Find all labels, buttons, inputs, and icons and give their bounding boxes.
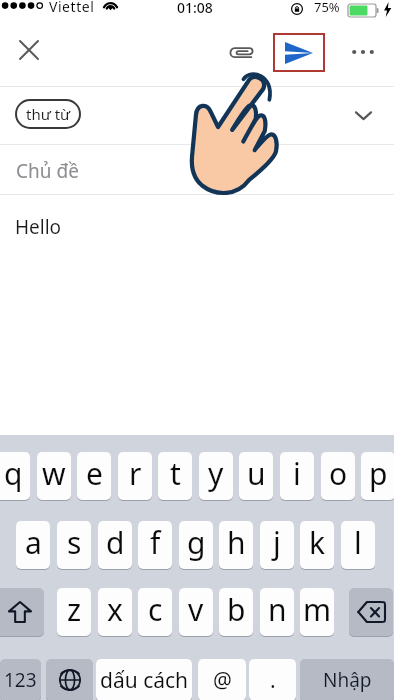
button[interactable]: s (57, 521, 91, 569)
staticText: w (42, 453, 66, 494)
staticText: 01:08 (177, 0, 213, 17)
staticText: q (4, 453, 23, 494)
staticText: l (354, 522, 362, 563)
staticText: v (188, 589, 204, 630)
staticText: d (106, 522, 125, 563)
staticText: u (247, 453, 266, 494)
staticText: n (268, 589, 287, 630)
staticText: @ (213, 666, 232, 695)
staticText: s (67, 522, 82, 563)
button[interactable]: d (98, 521, 132, 569)
button[interactable]: o (321, 452, 355, 500)
staticText: Nhập (323, 667, 372, 693)
staticText: x (107, 589, 123, 630)
button[interactable]: More options (346, 35, 380, 69)
button[interactable]: r (118, 452, 152, 500)
button[interactable]: . (249, 659, 296, 700)
button[interactable]: Switch keyboard (46, 659, 93, 700)
button[interactable]: Numbers (0, 659, 41, 700)
button[interactable]: Attach (227, 38, 257, 68)
button[interactable]: q (0, 452, 30, 500)
staticText: k (309, 522, 326, 563)
button[interactable]: e (77, 452, 111, 500)
button[interactable]: l (341, 521, 375, 569)
button[interactable]: i (280, 452, 314, 500)
button[interactable]: f (138, 521, 172, 569)
staticText: o (329, 453, 348, 494)
button[interactable]: thư từ (15, 99, 81, 129)
button[interactable]: @ (198, 659, 246, 700)
button[interactable]: Close (14, 35, 44, 65)
staticText: Hello (15, 214, 62, 240)
staticText: m (303, 589, 332, 630)
staticText: thư từ (26, 104, 71, 124)
staticText: 123 (4, 667, 37, 693)
button[interactable]: Backspace (349, 588, 393, 636)
button[interactable]: u (239, 452, 273, 500)
staticText: Chủ đề (16, 158, 79, 184)
staticText: t (170, 453, 181, 494)
button[interactable]: k (300, 521, 334, 569)
staticText: h (227, 522, 246, 563)
staticText: 75% (314, 0, 340, 16)
staticText: Viettel (49, 0, 95, 16)
button[interactable]: v (179, 588, 213, 636)
button[interactable]: x (98, 588, 132, 636)
button[interactable]: c (138, 588, 172, 636)
button[interactable]: Shift (0, 588, 44, 636)
staticText: i (293, 453, 301, 494)
button[interactable]: b (219, 588, 253, 636)
button[interactable]: a (16, 521, 50, 569)
staticText: e (86, 453, 103, 494)
button[interactable]: Enter (300, 659, 394, 700)
staticText: r (129, 453, 142, 494)
staticText: a (25, 522, 42, 563)
button[interactable]: m (300, 588, 334, 636)
button[interactable]: Send (273, 33, 325, 72)
staticText: p (369, 453, 388, 494)
button[interactable]: w (37, 452, 71, 500)
staticText: j (273, 522, 281, 563)
button[interactable]: j (260, 521, 294, 569)
button[interactable]: n (260, 588, 294, 636)
staticText: c (148, 589, 163, 630)
button[interactable]: t (158, 452, 192, 500)
staticText: dấu cách (100, 666, 189, 695)
button[interactable]: y (199, 452, 233, 500)
button[interactable]: dấu cách (96, 659, 192, 700)
button[interactable]: z (57, 588, 91, 636)
button[interactable]: h (219, 521, 253, 569)
staticText: y (208, 453, 224, 494)
button[interactable]: p (361, 452, 394, 500)
staticText: b (227, 589, 246, 630)
staticText: g (187, 522, 206, 563)
button[interactable]: g (179, 521, 213, 569)
staticText: z (67, 589, 82, 630)
staticText: f (150, 522, 161, 563)
button[interactable]: Expand recipients (348, 100, 378, 130)
staticText: . (270, 666, 276, 695)
